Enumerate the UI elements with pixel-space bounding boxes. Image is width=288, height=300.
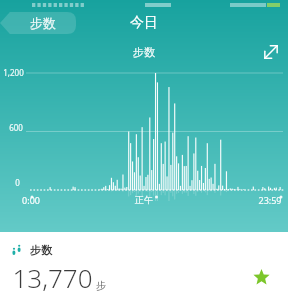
staticText: 13,770 <box>12 260 93 295</box>
staticText: 0 <box>15 177 20 188</box>
button[interactable]: Goal achieved <box>253 269 270 286</box>
staticText: 600 <box>9 122 23 133</box>
button[interactable]: Expand chart <box>261 42 281 62</box>
staticText: 步数 <box>30 15 56 31</box>
staticText: 1,200 <box>3 67 24 78</box>
staticText: 步数 <box>30 243 52 257</box>
staticText: 正午 <box>135 194 153 205</box>
staticText: 步数 <box>133 45 155 59</box>
staticText: 23:59 <box>258 194 282 206</box>
staticText: 今日 <box>130 14 158 32</box>
staticText: 步 <box>96 279 106 292</box>
button[interactable]: 步数 <box>0 232 288 300</box>
staticText: 0:00 <box>22 194 40 206</box>
button[interactable]: 步数 <box>0 12 76 34</box>
